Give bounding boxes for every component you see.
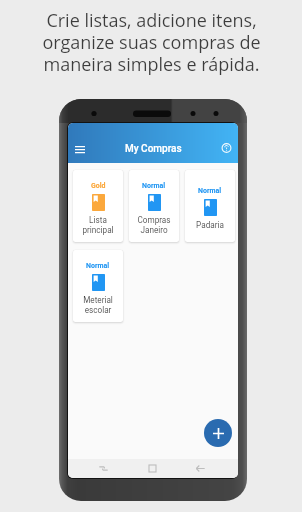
button[interactable]: Recents: [68, 459, 124, 478]
staticText: Normal: [142, 182, 166, 190]
button[interactable]: Help: [217, 138, 237, 158]
button[interactable]: Normal: [73, 250, 123, 322]
staticText: Meterial escolar: [83, 295, 113, 315]
button[interactable]: Normal: [129, 170, 179, 242]
staticText: Normal: [86, 262, 110, 270]
staticText: Gold: [91, 182, 106, 190]
staticText: Normal: [198, 187, 222, 195]
button[interactable]: Add list: [204, 419, 232, 447]
staticText: Compras Janeiro: [137, 215, 171, 235]
button[interactable]: Gold: [73, 170, 123, 242]
staticText: My Compras: [125, 143, 182, 155]
button[interactable]: Normal: [185, 170, 235, 242]
button[interactable]: Menu: [70, 144, 90, 154]
staticText: Crie listas, adicione itens, organize su…: [42, 8, 261, 77]
staticText: Lista principal: [82, 215, 114, 235]
staticText: Padaria: [196, 220, 224, 230]
button[interactable]: Home: [124, 459, 181, 478]
button[interactable]: Back: [181, 459, 238, 478]
